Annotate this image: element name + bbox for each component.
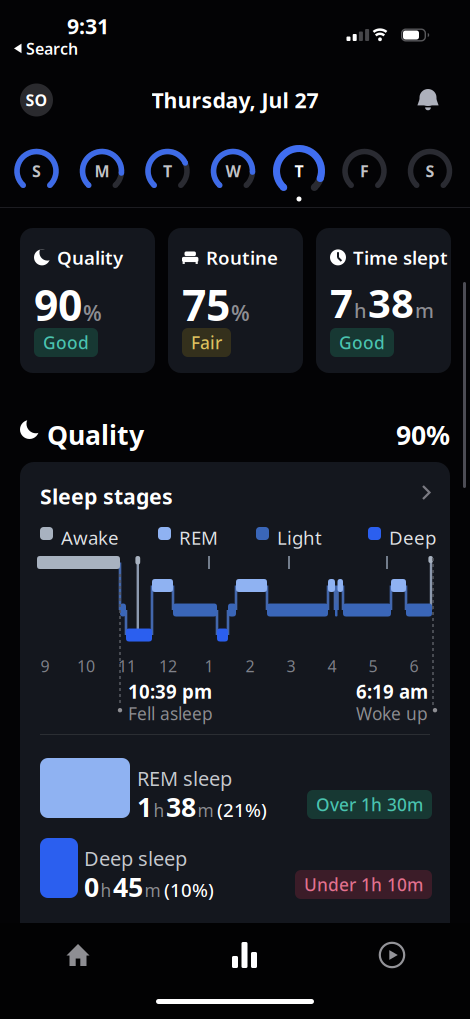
staticText: 10 [77, 655, 95, 677]
staticText: Deep sleep [84, 845, 187, 872]
staticText: 1 [204, 655, 213, 677]
staticText: 1 [137, 789, 152, 824]
staticText: 10:39 pm [128, 679, 212, 704]
staticText: REM sleep [137, 765, 232, 792]
staticText: (21%) [217, 797, 267, 822]
staticText: h [354, 297, 367, 324]
staticText: Woke up [356, 702, 428, 725]
staticText: Fell asleep [128, 702, 213, 725]
staticText: 12 [159, 655, 177, 677]
staticText: Search [26, 38, 78, 59]
staticText: 45 [113, 869, 143, 904]
staticText: 90% [396, 417, 450, 452]
staticText: 0 [84, 869, 99, 904]
button[interactable]: Time slept [316, 228, 451, 373]
staticText: S [425, 160, 434, 182]
staticText: Quality [47, 417, 144, 452]
button[interactable] [352, 930, 432, 980]
staticText: Fair [191, 331, 222, 354]
staticText: Light [277, 525, 322, 550]
staticText: m [415, 297, 434, 324]
staticText: W [225, 160, 240, 182]
button[interactable] [38, 930, 118, 980]
button[interactable]: W [0, 0, 470, 1019]
staticText: h [153, 799, 164, 822]
staticText: Time slept [353, 245, 448, 270]
staticText: 6:19 am [356, 679, 428, 704]
button[interactable]: T [0, 0, 470, 1019]
button[interactable]: SO [20, 83, 53, 116]
staticText: Thursday, Jul 27 [151, 86, 318, 114]
staticText: 5 [368, 655, 377, 677]
staticText: Over 1h 30m [316, 793, 423, 816]
button[interactable]: Sleep stages [20, 462, 450, 512]
staticText: REM [179, 525, 218, 550]
staticText: 9 [40, 655, 49, 677]
button[interactable]: T [0, 0, 470, 1019]
staticText: 2 [245, 655, 254, 677]
button[interactable]: M [0, 0, 470, 1019]
staticText: 90 [34, 276, 82, 333]
staticText: SO [25, 89, 47, 111]
staticText: T [294, 160, 303, 182]
staticText: S [32, 160, 41, 182]
staticText: Good [339, 331, 385, 354]
staticText: 11 [118, 655, 136, 677]
staticText: Awake [61, 525, 119, 550]
staticText: 9:31 [67, 12, 109, 40]
button[interactable]: S [0, 0, 470, 1019]
button[interactable]: S [0, 0, 470, 1019]
staticText: 75 [182, 276, 230, 333]
staticText: (10%) [164, 877, 214, 902]
staticText: Quality [57, 245, 123, 270]
button[interactable] [417, 89, 439, 111]
staticText: T [163, 160, 172, 182]
staticText: m [197, 799, 213, 822]
button[interactable]: Routine [168, 228, 303, 373]
button[interactable]: Quality [20, 228, 155, 373]
staticText: M [94, 160, 109, 182]
staticText: h [100, 879, 111, 902]
staticText: F [360, 160, 369, 182]
staticText: 6 [409, 655, 418, 677]
staticText: Deep [389, 525, 436, 550]
staticText: 38 [166, 789, 196, 824]
staticText: Good [43, 331, 89, 354]
staticText: 7 [330, 276, 353, 329]
staticText: 4 [327, 655, 336, 677]
button[interactable]: F [0, 0, 470, 1019]
staticText: m [144, 879, 160, 902]
staticText: 38 [368, 276, 414, 329]
staticText: % [231, 298, 250, 327]
button[interactable] [195, 930, 275, 980]
staticText: Routine [206, 245, 278, 270]
staticText: 3 [286, 655, 295, 677]
staticText: Sleep stages [40, 482, 173, 510]
staticText: Under 1h 10m [304, 873, 423, 896]
staticText: % [83, 298, 102, 327]
